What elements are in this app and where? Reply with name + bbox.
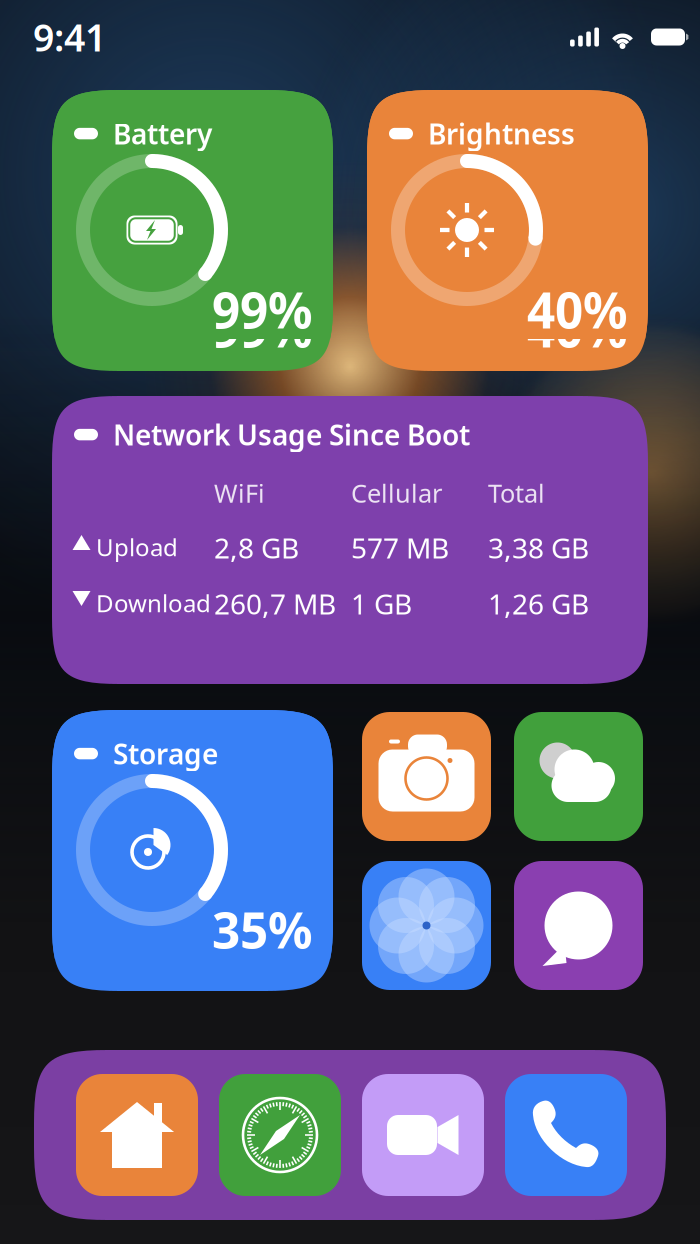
staticText: Storage — [113, 735, 218, 772]
staticText: Cellular — [351, 476, 442, 510]
staticText: 9:41 — [33, 12, 106, 62]
staticText: 1 GB — [351, 585, 412, 622]
staticText: 577 MB — [351, 529, 449, 566]
staticText: WiFi — [214, 476, 265, 510]
staticText: Download — [96, 587, 211, 619]
staticText: 3,38 GB — [488, 529, 589, 566]
staticText: Total — [488, 476, 545, 510]
staticText: Brightness — [428, 115, 575, 152]
staticText: 99% — [212, 276, 312, 342]
button[interactable]: 99% — [52, 90, 333, 371]
staticText: Battery — [113, 115, 212, 152]
button[interactable]: Safari — [219, 1074, 341, 1196]
staticText: 40% — [527, 295, 627, 361]
button[interactable]: Photos — [362, 861, 491, 990]
button[interactable] — [52, 710, 333, 991]
staticText: Network Usage Since Boot — [113, 416, 470, 453]
staticText: 2,8 GB — [214, 529, 299, 566]
staticText: 99% — [212, 295, 312, 361]
staticText: Upload — [96, 531, 178, 563]
button[interactable]: Home — [76, 1074, 198, 1196]
staticText: 260,7 MB — [214, 585, 336, 622]
staticText: 1,26 GB — [488, 585, 589, 622]
staticText: 40% — [527, 276, 627, 342]
staticText: 35% — [212, 896, 312, 962]
button[interactable]: Phone — [505, 1074, 627, 1196]
button[interactable]: Weather — [514, 712, 643, 841]
button[interactable]: 40% — [367, 90, 648, 371]
button[interactable]: Messages — [514, 861, 643, 990]
button[interactable]: Camera — [362, 712, 491, 841]
button[interactable]: FaceTime — [362, 1074, 484, 1196]
button[interactable]: Network Usage Since Boot — [52, 396, 648, 684]
